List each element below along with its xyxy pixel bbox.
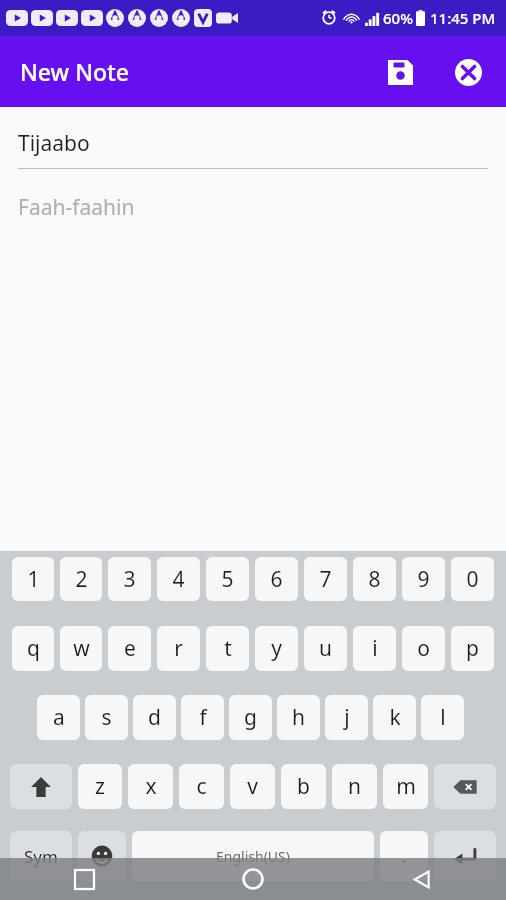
staticText: 2 <box>75 565 88 594</box>
staticText: k <box>389 703 401 732</box>
staticText: 8 <box>368 565 381 594</box>
staticText: 3 <box>123 565 136 594</box>
button[interactable]: Emoji <box>78 831 126 881</box>
staticText: p <box>466 634 479 663</box>
button[interactable]: Cancel <box>444 48 492 96</box>
staticText: Faah-faahin <box>18 193 135 222</box>
button[interactable]: h <box>277 695 320 740</box>
button[interactable]: j <box>325 695 368 740</box>
button[interactable]: z <box>78 764 122 809</box>
button[interactable]: Tijaabo <box>18 129 488 169</box>
staticText: h <box>292 703 305 732</box>
staticText: 60% <box>383 8 413 28</box>
button[interactable]: English(US) <box>132 831 374 881</box>
button[interactable]: d <box>133 695 176 740</box>
staticText: f <box>199 703 207 732</box>
button[interactable]: 2 <box>60 557 102 601</box>
staticText: m <box>396 772 416 801</box>
button[interactable]: e <box>108 626 151 671</box>
staticText: 4 <box>172 565 185 594</box>
button[interactable]: n <box>332 764 377 809</box>
button[interactable]: Faah-faahin <box>18 193 488 587</box>
staticText: q <box>27 634 40 663</box>
button[interactable]: . <box>380 831 428 881</box>
button[interactable]: u <box>304 626 347 671</box>
button[interactable]: a <box>37 695 80 740</box>
button[interactable]: Recent apps <box>0 858 168 900</box>
button[interactable]: p <box>451 626 494 671</box>
button[interactable]: 7 <box>304 557 347 601</box>
staticText: 1 <box>27 565 40 594</box>
staticText: . <box>401 843 407 869</box>
button[interactable]: Sym <box>10 831 72 881</box>
staticText: r <box>174 634 183 663</box>
button[interactable]: m <box>383 764 428 809</box>
staticText: 5 <box>221 565 234 594</box>
staticText: Tijaabo <box>18 129 90 158</box>
button[interactable]: Home <box>168 858 337 900</box>
button[interactable]: i <box>353 626 396 671</box>
button[interactable]: 9 <box>402 557 445 601</box>
staticText: y <box>271 634 282 663</box>
button[interactable]: t <box>206 626 249 671</box>
button[interactable]: 6 <box>255 557 298 601</box>
staticText: New Note <box>20 56 130 87</box>
button[interactable]: 0 <box>451 557 494 601</box>
staticText: l <box>440 703 446 732</box>
button[interactable]: k <box>373 695 416 740</box>
button[interactable]: y <box>255 626 298 671</box>
staticText: Sym <box>24 845 58 868</box>
staticText: s <box>101 703 112 732</box>
button[interactable]: 5 <box>206 557 249 601</box>
staticText: t <box>224 634 232 663</box>
button[interactable]: Save note <box>376 48 424 96</box>
staticText: d <box>148 703 161 732</box>
staticText: 6 <box>270 565 283 594</box>
button[interactable]: Back <box>337 858 506 900</box>
staticText: x <box>145 772 157 801</box>
button[interactable]: l <box>421 695 464 740</box>
staticText: e <box>124 634 136 663</box>
button[interactable]: Enter <box>434 831 496 881</box>
button[interactable]: o <box>402 626 445 671</box>
button[interactable]: v <box>230 764 275 809</box>
button[interactable]: w <box>60 626 102 671</box>
button[interactable]: b <box>281 764 326 809</box>
button[interactable]: g <box>229 695 272 740</box>
button[interactable]: c <box>179 764 224 809</box>
staticText: w <box>73 634 90 663</box>
staticText: u <box>319 634 332 663</box>
button[interactable]: Shift <box>10 764 72 809</box>
staticText: a <box>53 703 65 732</box>
button[interactable]: x <box>128 764 173 809</box>
button[interactable]: q <box>12 626 54 671</box>
staticText: v <box>247 772 258 801</box>
staticText: o <box>417 634 430 663</box>
staticText: c <box>196 772 207 801</box>
staticText: z <box>95 772 105 801</box>
staticText: j <box>344 703 350 732</box>
staticText: n <box>348 772 361 801</box>
button[interactable]: r <box>157 626 200 671</box>
staticText: 11:45 PM <box>430 8 496 28</box>
button[interactable]: Backspace <box>434 764 496 809</box>
staticText: 0 <box>466 565 479 594</box>
staticText: b <box>297 772 310 801</box>
staticText: g <box>244 703 257 732</box>
staticText: 7 <box>319 565 332 594</box>
staticText: English(US) <box>216 847 290 866</box>
button[interactable]: 4 <box>157 557 200 601</box>
button[interactable]: s <box>85 695 128 740</box>
button[interactable]: 8 <box>353 557 396 601</box>
staticText: 9 <box>417 565 430 594</box>
button[interactable]: 1 <box>12 557 54 601</box>
button[interactable]: f <box>181 695 224 740</box>
button[interactable]: 3 <box>108 557 151 601</box>
staticText: i <box>372 634 378 663</box>
